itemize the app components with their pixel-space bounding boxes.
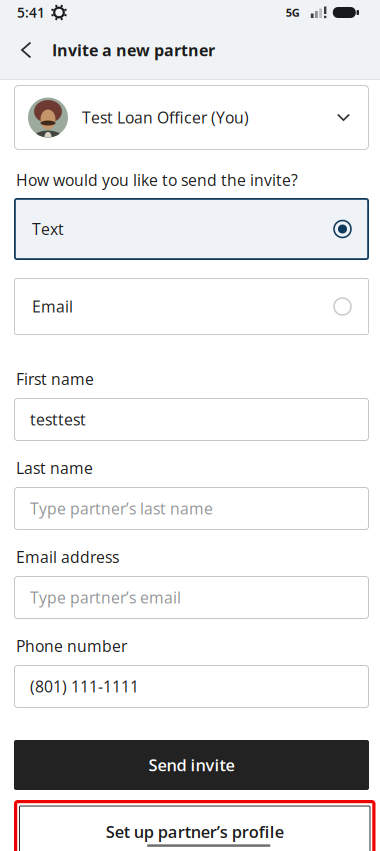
staticText: Invite a new partner <box>52 39 215 61</box>
staticText: testtest <box>30 409 86 430</box>
staticText: Type partner’s last name <box>30 498 213 519</box>
staticText: Email <box>32 296 73 317</box>
staticText: Type partner’s email <box>30 587 181 608</box>
staticText: Test Loan Officer (You) <box>82 107 249 128</box>
staticText: Phone number <box>16 635 127 657</box>
button[interactable]: Back <box>0 41 39 58</box>
staticText: Email address <box>16 546 119 568</box>
staticText: (801) 111-1111 <box>30 676 139 697</box>
staticText: Send invite <box>148 754 234 776</box>
staticText: 5G <box>286 5 300 20</box>
button[interactable]: Test Loan Officer (You) <box>14 85 369 150</box>
button[interactable]: Type partner’s last name <box>14 487 369 530</box>
staticText: First name <box>16 368 94 390</box>
button[interactable]: Set up partner’s profile <box>19 805 370 851</box>
button[interactable]: Send invite <box>14 740 369 790</box>
button[interactable]: Email <box>14 278 369 335</box>
button[interactable]: testtest <box>14 398 369 441</box>
staticText: How would you like to send the invite? <box>16 169 298 191</box>
staticText: Set up partner’s profile <box>106 820 284 843</box>
staticText: 5:41 <box>17 3 45 22</box>
button[interactable]: Text <box>14 198 369 260</box>
staticText: Text <box>32 218 64 240</box>
button[interactable]: Type partner’s email <box>14 576 369 619</box>
button[interactable]: (801) 111-1111 <box>14 665 369 708</box>
staticText: Last name <box>16 457 93 479</box>
